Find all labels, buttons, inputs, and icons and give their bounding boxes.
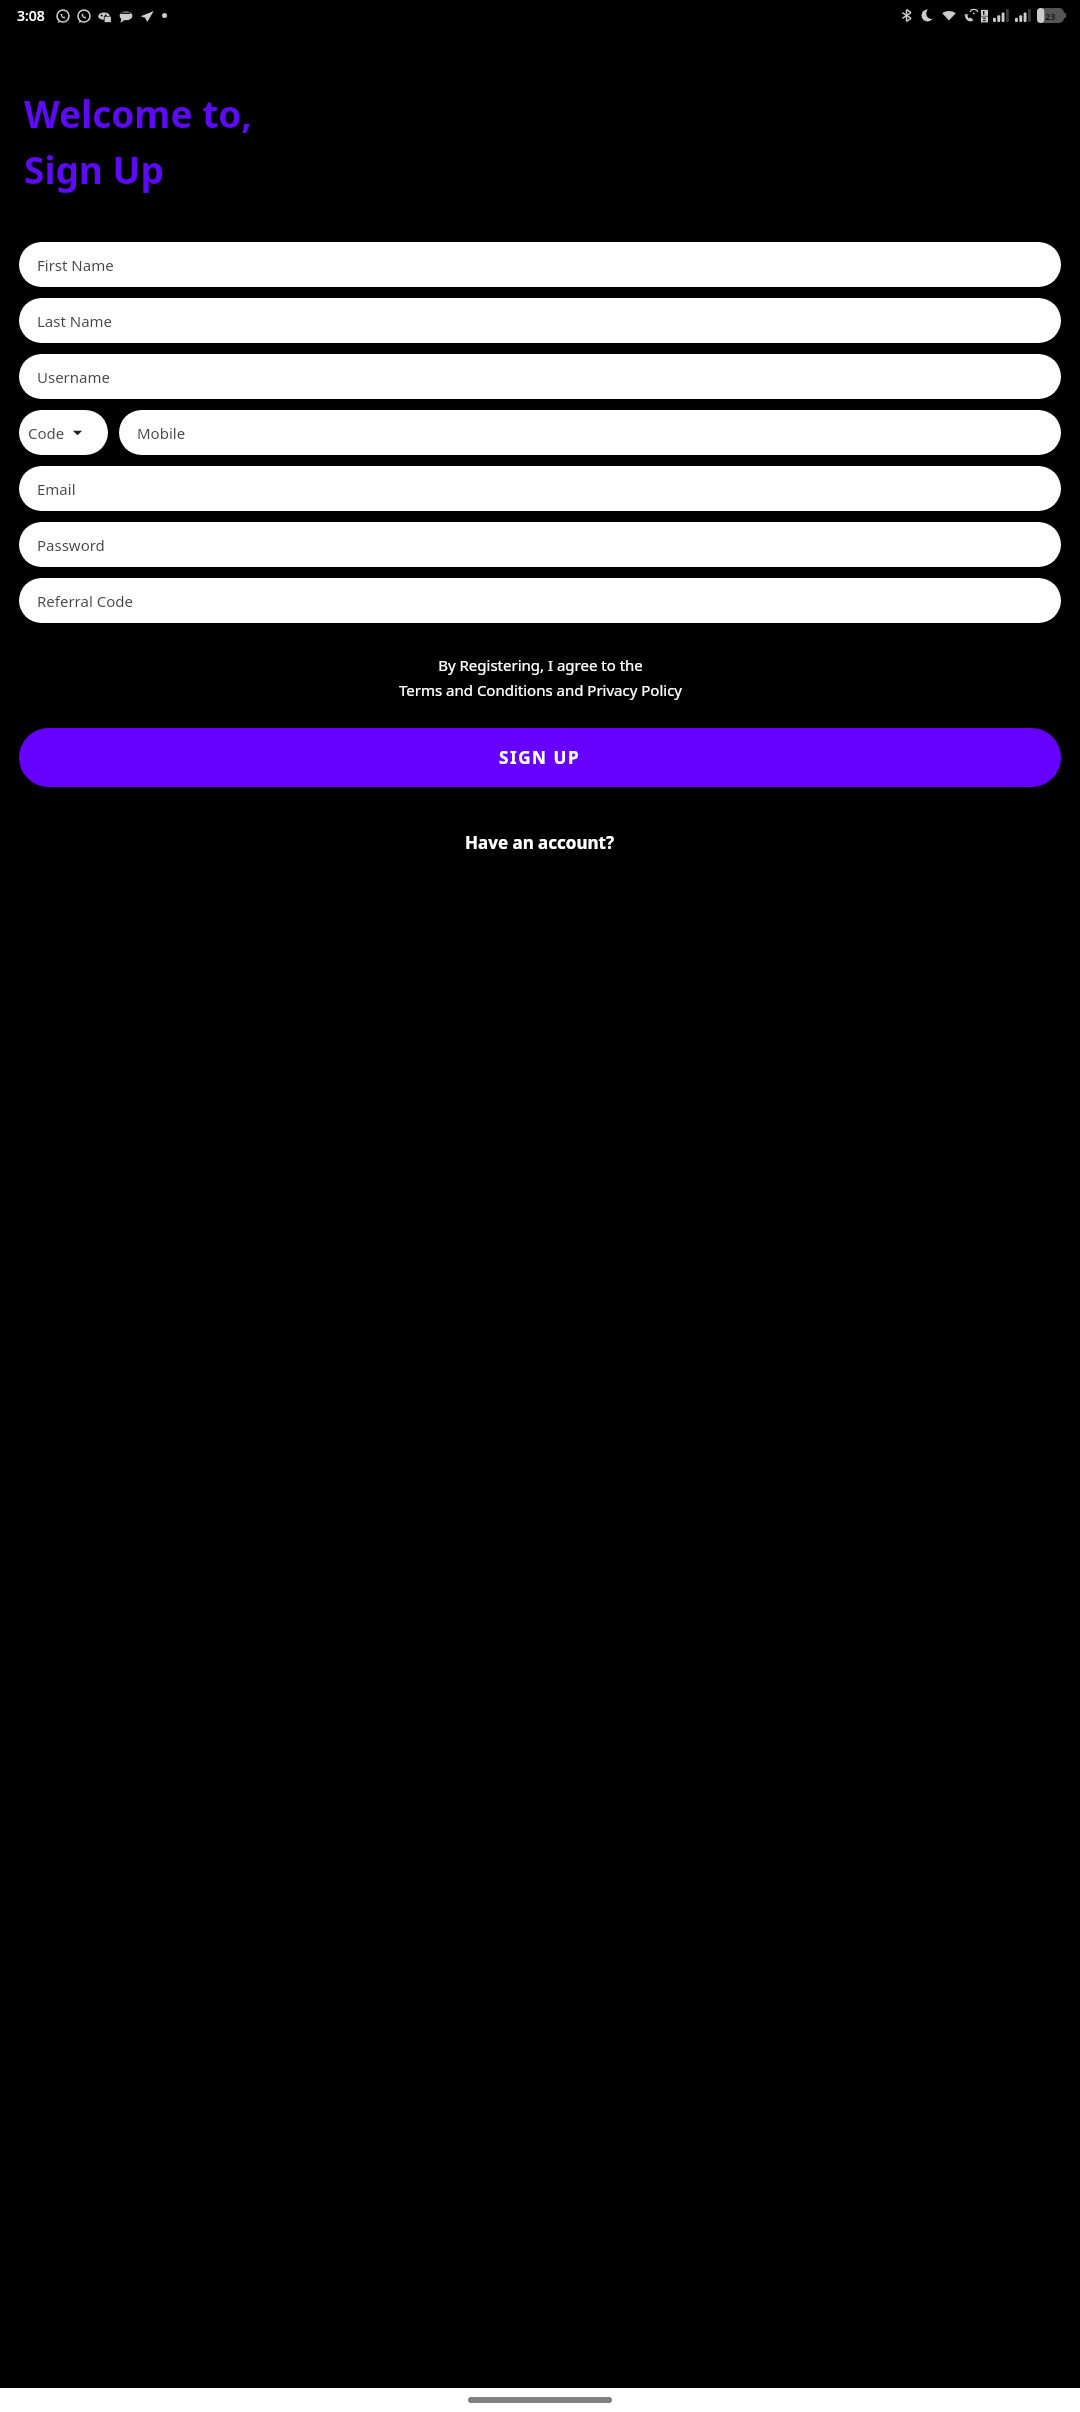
button[interactable]: Last Name: [19, 298, 1061, 343]
button[interactable]: Mobile: [119, 410, 1061, 455]
staticText: First Name: [37, 255, 114, 275]
button[interactable]: SIGN UP: [19, 728, 1061, 787]
button[interactable]: Referral Code: [19, 578, 1061, 623]
staticText: Sign Up: [24, 144, 164, 194]
staticText: Mobile: [137, 423, 186, 443]
staticText: SIGN UP: [499, 746, 581, 769]
button[interactable]: Password: [19, 522, 1061, 567]
staticText: 23: [1045, 10, 1056, 22]
button[interactable]: Code: [19, 410, 108, 455]
staticText: 3:08: [17, 6, 45, 25]
staticText: Terms and Conditions and Privacy Policy: [399, 680, 682, 700]
staticText: Code: [28, 423, 65, 443]
staticText: Welcome to,: [24, 88, 252, 138]
staticText: Referral Code: [37, 591, 133, 611]
staticText: Email: [37, 479, 76, 499]
button[interactable]: Have an account?: [0, 831, 1080, 854]
button[interactable]: First Name: [19, 242, 1061, 287]
staticText: By Registering, I agree to the: [438, 655, 643, 675]
button[interactable]: Username: [19, 354, 1061, 399]
staticText: Last Name: [37, 311, 113, 331]
button[interactable]: Email: [19, 466, 1061, 511]
staticText: Password: [37, 535, 105, 555]
staticText: Username: [37, 367, 110, 387]
staticText: Have an account?: [465, 831, 615, 854]
